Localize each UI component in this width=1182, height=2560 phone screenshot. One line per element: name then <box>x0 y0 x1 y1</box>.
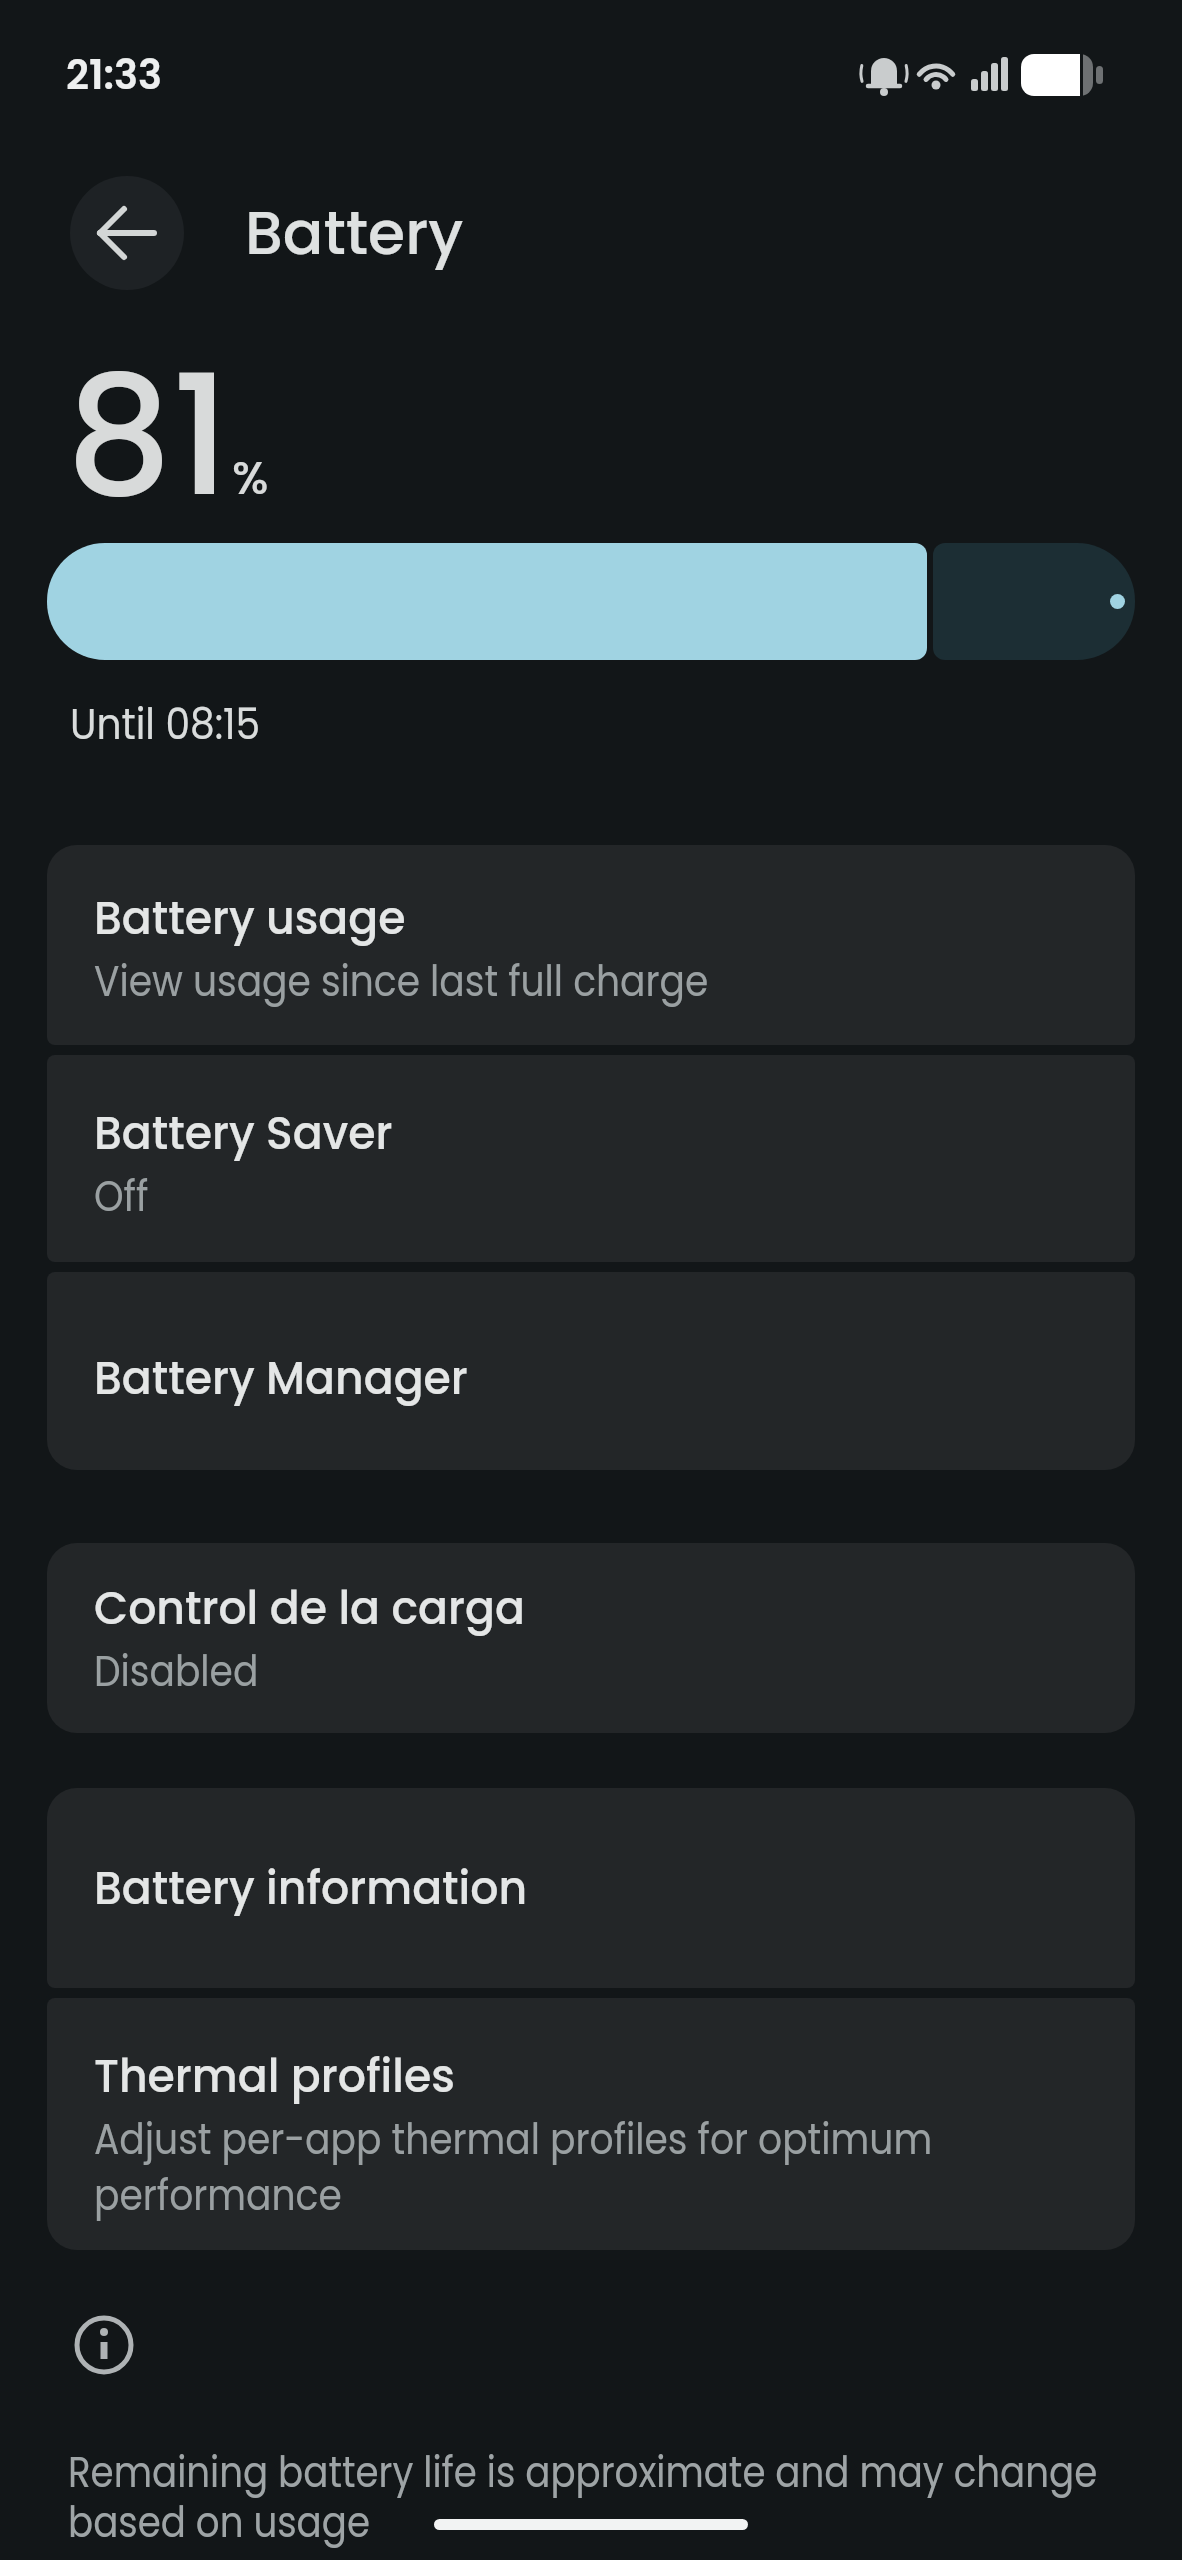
staticText: Battery information <box>94 1855 527 1921</box>
button[interactable] <box>70 176 184 290</box>
staticText: Battery usage <box>94 885 406 951</box>
staticText: Battery <box>245 191 464 275</box>
staticText: Adjust per-app thermal profiles for opti… <box>94 2109 964 2225</box>
staticText: 21:33 <box>66 47 162 103</box>
button[interactable]: Battery Saver <box>47 1055 1135 1262</box>
staticText: 81 <box>66 320 231 552</box>
staticText: % <box>232 446 269 510</box>
staticText: Battery Saver <box>94 1100 393 1166</box>
staticText: View usage since last full charge <box>94 951 709 1011</box>
staticText: Off <box>94 1166 149 1226</box>
button[interactable]: Battery Manager <box>47 1272 1135 1470</box>
staticText: Thermal profiles <box>94 2043 455 2109</box>
staticText: Battery Manager <box>94 1345 468 1411</box>
button[interactable]: Battery usage <box>47 845 1135 1045</box>
staticText: Until 08:15 <box>70 694 260 754</box>
staticText: Remaining battery life is approximate an… <box>68 2442 1090 2552</box>
staticText: Control de la carga <box>94 1575 525 1641</box>
button[interactable]: Thermal profiles <box>47 1998 1135 2250</box>
staticText: Disabled <box>94 1641 258 1701</box>
button[interactable]: Battery information <box>47 1788 1135 1988</box>
button[interactable]: Control de la carga <box>47 1543 1135 1733</box>
